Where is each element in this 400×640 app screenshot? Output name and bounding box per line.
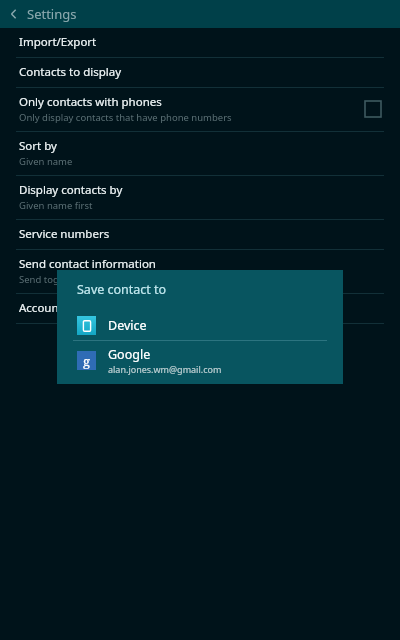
staticText: g [83, 352, 90, 370]
button[interactable]: Send contact information [0, 250, 400, 293]
button[interactable]: Display contacts by [0, 176, 400, 219]
button[interactable]: Sort by [0, 132, 400, 175]
staticText: Send contact information [19, 256, 156, 272]
button[interactable]: Service numbers [0, 220, 400, 249]
button[interactable]: Device [57, 311, 343, 340]
staticText: Only display contacts that have phone nu… [19, 111, 232, 124]
staticText: Service numbers [19, 226, 110, 242]
staticText: Google [108, 346, 151, 363]
staticText: alan.jones.wm@gmail.com [108, 363, 222, 375]
button[interactable]: Settings [0, 0, 400, 28]
staticText: Device [108, 317, 147, 334]
staticText: Contacts to display [19, 64, 122, 80]
staticText: Save contact to [77, 281, 167, 298]
staticText: Only contacts with phones [19, 94, 162, 110]
staticText: Import/Export [19, 34, 97, 50]
staticText: Display contacts by [19, 182, 123, 198]
staticText: Given name [19, 155, 73, 168]
button[interactable]: g [57, 341, 343, 384]
button[interactable]: Import/Export [0, 28, 400, 57]
staticText: Accounts [19, 300, 69, 316]
staticText: Settings [27, 5, 77, 23]
staticText: Sort by [19, 138, 57, 154]
staticText: Send together [19, 273, 83, 286]
button[interactable]: Accounts [0, 294, 400, 323]
button[interactable]: Contacts to display [0, 58, 400, 87]
button[interactable]: Only contacts with phones checkbox [362, 98, 384, 120]
staticText: Given name first [19, 199, 93, 212]
button[interactable]: Only contacts with phones [0, 88, 400, 131]
